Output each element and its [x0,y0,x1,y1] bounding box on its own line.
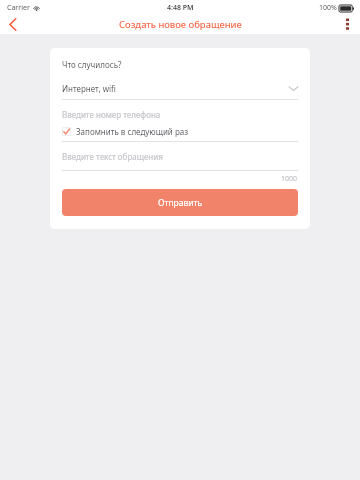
staticText: Что случилось? [62,59,122,70]
staticText: Carrier [7,3,30,13]
staticText: Интернет, wifi [62,83,116,94]
button[interactable]: Отправить [62,189,298,216]
staticText: 100% [319,3,337,13]
staticText: 4:48 PM [167,3,194,13]
button[interactable]: Запомнить в следующий раз [62,126,298,137]
button[interactable]: More options [334,15,360,34]
staticText: 1000 [281,174,298,184]
staticText: Введите номер телефона [62,109,161,120]
button[interactable]: Введите номер телефона [62,109,298,120]
button[interactable]: Back [0,15,30,34]
button[interactable]: Введите текст обращения [62,151,298,162]
staticText: Введите текст обращения [62,151,163,162]
staticText: Отправить [158,197,203,209]
staticText: Создать новое обращение [119,18,242,31]
button[interactable]: Интернет, wifi [62,83,298,94]
staticText: Запомнить в следующий раз [76,126,189,137]
